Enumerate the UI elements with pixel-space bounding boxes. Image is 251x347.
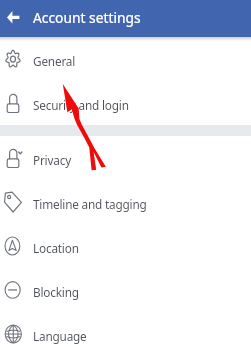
button[interactable]: Blocking	[0, 268, 251, 312]
button[interactable]: Language	[0, 312, 251, 347]
button[interactable]: Back	[2, 6, 24, 29]
staticText: Location	[33, 240, 79, 256]
staticText: Timeline and tagging	[33, 196, 147, 212]
staticText: General	[33, 53, 76, 69]
button[interactable]: Privacy	[0, 136, 251, 180]
staticText: Blocking	[33, 284, 79, 300]
staticText: Language	[33, 328, 87, 344]
staticText: Privacy	[33, 152, 71, 168]
button[interactable]: General	[0, 37, 251, 81]
button[interactable]: Location	[0, 224, 251, 268]
button[interactable]: Security and login	[0, 81, 251, 125]
staticText: Security and login	[33, 97, 129, 113]
button[interactable]: Timeline and tagging	[0, 180, 251, 224]
staticText: Account settings	[33, 8, 141, 27]
